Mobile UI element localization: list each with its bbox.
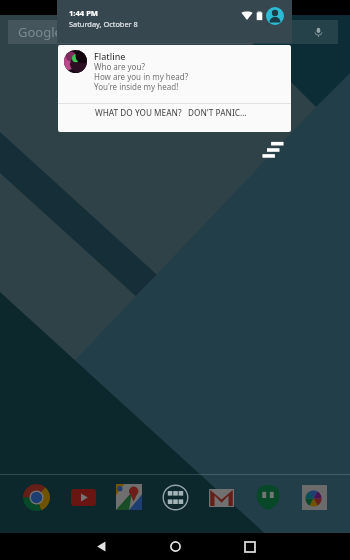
button[interactable]: Photos	[302, 485, 327, 510]
button[interactable]: Chrome	[23, 484, 50, 511]
other: Sync	[261, 141, 285, 159]
button[interactable]: Maps	[116, 484, 142, 510]
other: Voice search	[313, 27, 324, 38]
button[interactable]: Back	[80, 533, 122, 560]
staticText: WHAT DO YOU MEAN?	[95, 107, 182, 118]
button[interactable]: Home	[154, 533, 196, 560]
staticText: DON'T PANIC…	[188, 107, 247, 118]
button[interactable]: Google	[8, 20, 338, 44]
staticText: 1:44 PM	[69, 8, 99, 18]
button[interactable]: WHAT DO YOU MEAN?	[95, 107, 182, 127]
staticText: Saturday, October 8	[69, 19, 138, 29]
staticText: Google	[18, 23, 62, 41]
button[interactable]: Hangouts	[255, 484, 281, 510]
button[interactable]: Gmail	[208, 484, 235, 511]
button[interactable]: YouTube	[70, 484, 97, 511]
staticText: How are you in my head?	[94, 71, 189, 82]
button[interactable]: Flatline	[58, 45, 291, 132]
button[interactable]: DON'T PANIC…	[188, 107, 247, 127]
staticText: Who are you?	[94, 61, 145, 72]
button[interactable]: All apps	[162, 484, 189, 511]
button[interactable]: Recent apps	[229, 533, 271, 560]
button[interactable]: Switch user	[266, 7, 284, 25]
staticText: Flatline	[94, 50, 126, 62]
staticText: You're inside my head!	[94, 81, 179, 92]
